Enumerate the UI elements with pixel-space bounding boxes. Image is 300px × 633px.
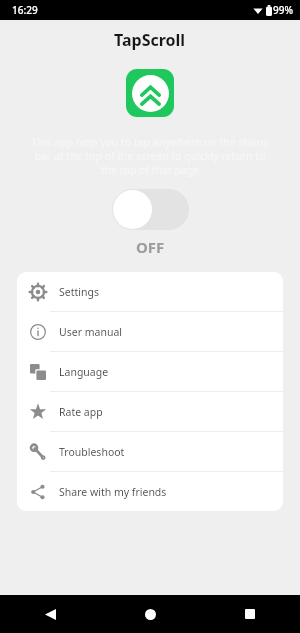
button[interactable]: Recent apps (232, 596, 268, 632)
staticText: OFF (136, 237, 165, 257)
button[interactable]: Settings (17, 272, 283, 311)
button[interactable]: Home (132, 596, 168, 632)
button[interactable]: Enable TapScroll (112, 189, 189, 230)
staticText: Settings (59, 285, 99, 299)
staticText: Share with my friends (59, 485, 167, 499)
button[interactable]: Troubleshoot (17, 432, 283, 471)
staticText: TapScroll (114, 29, 186, 51)
button[interactable]: Share with my friends (17, 472, 283, 511)
staticText: 99% (273, 3, 293, 17)
button[interactable]: Back (32, 596, 68, 632)
button[interactable]: User manual (17, 312, 283, 351)
staticText: 16:29 (12, 3, 38, 17)
staticText: Rate app (59, 405, 103, 419)
staticText: User manual (59, 325, 122, 339)
button[interactable]: Language (17, 352, 283, 391)
button[interactable]: Rate app (17, 392, 283, 431)
staticText: Troubleshoot (59, 445, 125, 459)
staticText: Language (59, 365, 109, 379)
